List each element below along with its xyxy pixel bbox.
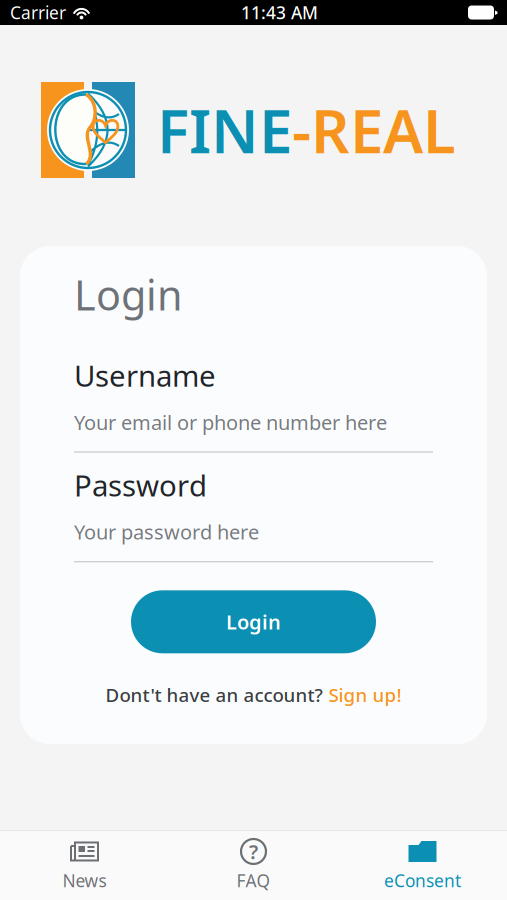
- staticText: Login: [74, 267, 183, 322]
- staticText: Login: [226, 608, 281, 635]
- staticText: FAQ: [236, 869, 270, 892]
- button[interactable]: Login: [131, 590, 376, 653]
- staticText: Dont't have an account?: [105, 682, 322, 707]
- staticText: Your password here: [74, 519, 259, 545]
- staticText: FINE: [157, 90, 292, 170]
- staticText: -REAL: [292, 90, 456, 170]
- staticText: Carrier: [10, 1, 66, 24]
- staticText: News: [62, 869, 106, 892]
- staticText: ?: [249, 838, 258, 865]
- button[interactable]: News: [0, 831, 169, 900]
- staticText: 11:43 AM: [241, 1, 318, 24]
- button[interactable]: Sign up!: [328, 682, 401, 707]
- staticText: Username: [74, 356, 216, 395]
- staticText: Sign up!: [328, 682, 401, 707]
- staticText: Password: [74, 466, 207, 505]
- button[interactable]: ?: [169, 831, 338, 900]
- staticText: Your email or phone number here: [74, 409, 387, 435]
- button[interactable]: eConsent: [338, 831, 507, 900]
- staticText: eConsent: [384, 869, 461, 892]
